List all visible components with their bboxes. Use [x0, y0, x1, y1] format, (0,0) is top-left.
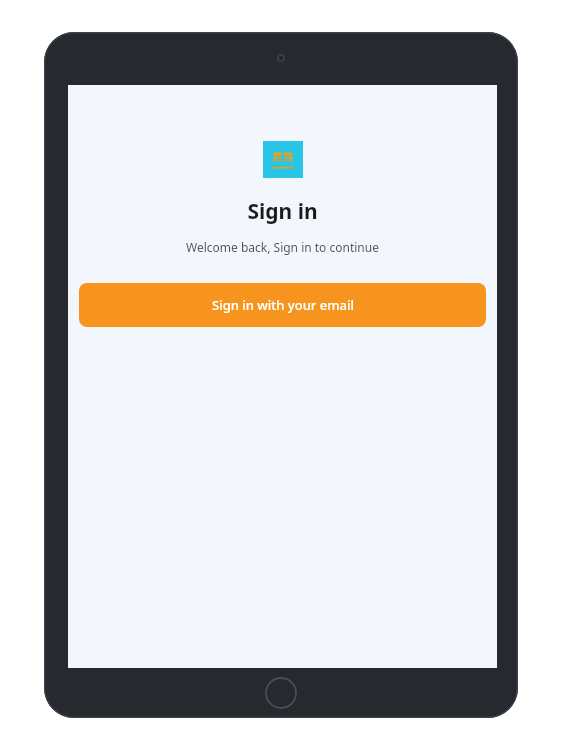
staticText: Welcome back, Sign in to continue [186, 239, 379, 255]
staticText: Sign in with your email [212, 296, 354, 314]
staticText: Sign in [247, 197, 318, 226]
button[interactable]: Sign in with your email [79, 283, 486, 327]
